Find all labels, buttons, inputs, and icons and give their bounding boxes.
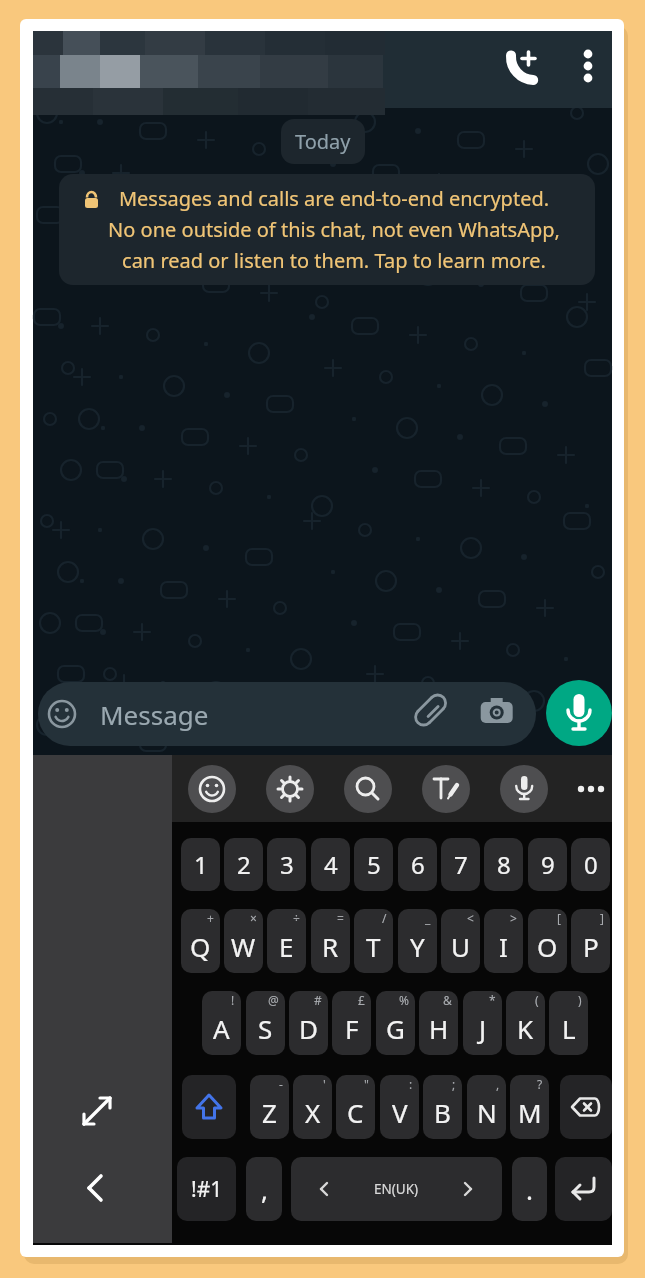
staticText: Message: [100, 697, 209, 732]
button[interactable]: Message: [38, 682, 536, 746]
button[interactable]: ,: [246, 1157, 282, 1221]
staticText: ×: [250, 910, 257, 926]
staticText: !: [231, 992, 235, 1008]
staticText: ,: [261, 1172, 268, 1207]
button[interactable]: 6: [398, 838, 437, 891]
staticText: 8: [497, 848, 511, 881]
staticText: [: [557, 910, 561, 926]
button[interactable]: O: [528, 909, 567, 973]
button[interactable]: .: [512, 1157, 547, 1221]
button[interactable]: E: [267, 909, 306, 973]
button[interactable]: D: [289, 991, 328, 1055]
staticText: ;: [452, 1076, 456, 1092]
button[interactable]: [564, 42, 612, 90]
staticText: <: [467, 910, 474, 926]
staticText: ]: [600, 910, 604, 926]
button[interactable]: G: [376, 991, 415, 1055]
button[interactable]: [422, 765, 470, 813]
button[interactable]: X: [293, 1075, 332, 1139]
button[interactable]: [555, 1157, 612, 1221]
button[interactable]: V: [380, 1075, 419, 1139]
button[interactable]: [546, 680, 612, 746]
staticText: ?: [537, 1076, 543, 1092]
staticText: F: [345, 1011, 359, 1046]
staticText: 6: [411, 848, 425, 881]
staticText: W: [231, 929, 256, 964]
button[interactable]: 2: [224, 838, 263, 891]
staticText: O: [537, 929, 558, 964]
button[interactable]: 8: [484, 838, 523, 891]
button[interactable]: Messages and calls are end-to-end encryp…: [59, 174, 595, 285]
staticText: ': [323, 1076, 326, 1092]
staticText: X: [305, 1095, 321, 1130]
staticText: Z: [262, 1095, 277, 1130]
staticText: +: [207, 910, 214, 926]
button[interactable]: B: [423, 1075, 462, 1139]
staticText: Y: [410, 929, 425, 964]
staticText: Messages and calls are end-to-end encryp…: [108, 185, 560, 274]
button[interactable]: S: [246, 991, 285, 1055]
staticText: ÷: [293, 910, 300, 926]
staticText: :: [409, 1076, 413, 1092]
button[interactable]: 7: [441, 838, 480, 891]
staticText: 0: [584, 848, 598, 881]
staticText: ": [364, 1076, 369, 1092]
button[interactable]: 5: [354, 838, 393, 891]
button[interactable]: [182, 1075, 236, 1139]
staticText: K: [517, 1011, 534, 1046]
staticText: %: [399, 992, 409, 1008]
button[interactable]: M: [510, 1075, 549, 1139]
button[interactable]: W: [224, 909, 263, 973]
button[interactable]: F: [332, 991, 371, 1055]
button[interactable]: C: [336, 1075, 375, 1139]
staticText: =: [337, 910, 344, 926]
staticText: _: [425, 910, 431, 926]
staticText: T: [366, 929, 381, 964]
button[interactable]: I: [484, 909, 523, 973]
button[interactable]: 4: [311, 838, 350, 891]
staticText: *: [489, 992, 496, 1008]
button[interactable]: [188, 765, 236, 813]
staticText: !#1: [191, 1175, 223, 1204]
button[interactable]: [569, 765, 613, 813]
button[interactable]: [266, 765, 314, 813]
button[interactable]: [500, 765, 548, 813]
button[interactable]: T: [354, 909, 393, 973]
button[interactable]: Q: [181, 909, 220, 973]
staticText: 9: [541, 848, 555, 881]
staticText: £: [358, 992, 365, 1008]
button[interactable]: N: [467, 1075, 506, 1139]
staticText: ): [578, 992, 582, 1008]
button[interactable]: P: [571, 909, 610, 973]
staticText: 5: [367, 848, 381, 881]
staticText: G: [386, 1011, 405, 1046]
staticText: @: [268, 992, 279, 1008]
button[interactable]: 3: [267, 838, 306, 891]
button[interactable]: !#1: [177, 1157, 236, 1221]
staticText: &: [443, 992, 452, 1008]
staticText: P: [583, 929, 599, 964]
button[interactable]: R: [311, 909, 350, 973]
button[interactable]: 0: [571, 838, 610, 891]
staticText: J: [479, 1011, 487, 1046]
button[interactable]: EN(UK): [291, 1157, 502, 1221]
button[interactable]: L: [549, 991, 588, 1055]
button[interactable]: [560, 1075, 612, 1139]
staticText: #: [314, 992, 322, 1008]
button[interactable]: Y: [398, 909, 437, 973]
button[interactable]: Z: [250, 1075, 289, 1139]
button[interactable]: K: [506, 991, 545, 1055]
staticText: L: [562, 1011, 576, 1046]
button[interactable]: 1: [181, 838, 220, 891]
button[interactable]: [344, 765, 392, 813]
button[interactable]: 9: [528, 838, 567, 891]
staticText: E: [279, 929, 294, 964]
button[interactable]: [497, 42, 545, 90]
button[interactable]: A: [202, 991, 241, 1055]
button[interactable]: U: [441, 909, 480, 973]
button[interactable]: [33, 755, 172, 1243]
button[interactable]: H: [419, 991, 458, 1055]
staticText: 1: [194, 848, 208, 881]
staticText: Q: [190, 929, 211, 964]
button[interactable]: J: [463, 991, 502, 1055]
